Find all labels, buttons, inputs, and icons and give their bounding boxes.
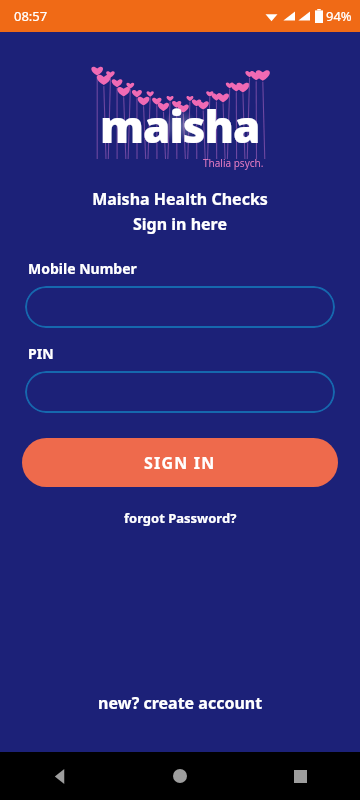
button[interactable]: Back — [0, 752, 120, 800]
staticText: maisha — [100, 96, 260, 156]
button[interactable]: PIN input — [25, 371, 335, 413]
staticText: 08:57 — [14, 7, 48, 25]
staticText: Mobile Number — [28, 259, 137, 278]
button[interactable]: Home — [120, 752, 240, 800]
staticText: Sign in here — [133, 213, 227, 235]
button[interactable]: SIGN IN — [22, 438, 338, 487]
staticText: SIGN IN — [144, 452, 216, 474]
staticText: new? create account — [98, 692, 263, 714]
button[interactable]: forgot Password? — [114, 505, 247, 531]
staticText: 94% — [326, 7, 352, 25]
button[interactable]: Mobile Number input — [25, 286, 335, 328]
staticText: forgot Password? — [124, 509, 237, 527]
staticText: Thalia psych. — [203, 156, 264, 170]
staticText: PIN — [28, 344, 54, 363]
staticText: Maisha Health Checks — [92, 188, 268, 210]
button[interactable]: new? create account — [86, 686, 275, 720]
button[interactable]: Recent apps — [240, 752, 360, 800]
